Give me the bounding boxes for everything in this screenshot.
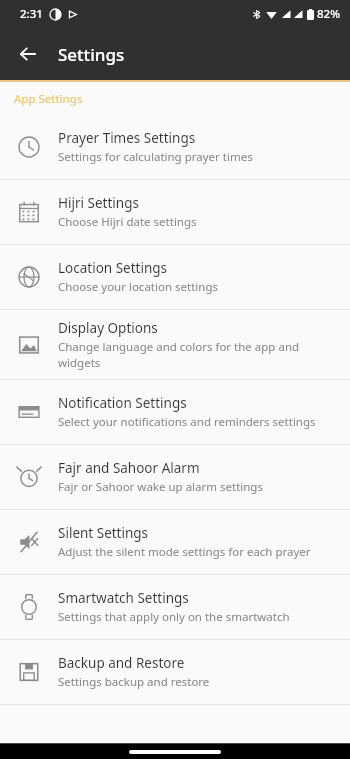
staticText: Prayer Times Settings [58,129,196,147]
staticText: Adjust the silent mode settings for each… [58,544,311,560]
staticText: Location Settings [58,259,168,277]
staticText: Fajr or Sahoor wake up alarm settings [58,479,263,495]
button[interactable]: Location Settings [0,245,350,309]
staticText: Change language and colors for the app a… [58,339,334,371]
button[interactable]: Fajr and Sahoor Alarm [0,445,350,509]
staticText: Settings [58,43,125,66]
staticText: Settings backup and restore [58,674,210,690]
staticText: Settings for calculating prayer times [58,149,253,165]
staticText: Choose your location settings [58,279,218,295]
staticText: App Settings [14,91,83,107]
button[interactable]: Smartwatch Settings [0,575,350,639]
staticText: Hijri Settings [58,194,139,212]
button[interactable]: Display Options [0,310,350,379]
button[interactable]: Notification Settings [0,380,350,444]
button[interactable]: Backup and Restore [0,640,350,704]
staticText: Choose Hijri date settings [58,214,197,230]
staticText: 2:31 [20,6,43,22]
staticText: Backup and Restore [58,654,185,672]
staticText: Display Options [58,319,158,337]
button[interactable]: Hijri Settings [0,180,350,244]
button[interactable]: Prayer Times Settings [0,115,350,179]
button[interactable]: Back [8,34,48,74]
staticText: Smartwatch Settings [58,589,189,607]
staticText: Select your notifications and reminders … [58,414,316,430]
staticText: 82% [317,6,340,22]
staticText: Settings that apply only on the smartwat… [58,609,290,625]
staticText: Fajr and Sahoor Alarm [58,459,200,477]
staticText: Notification Settings [58,394,187,412]
button[interactable]: Silent Settings [0,510,350,574]
staticText: Silent Settings [58,524,149,542]
